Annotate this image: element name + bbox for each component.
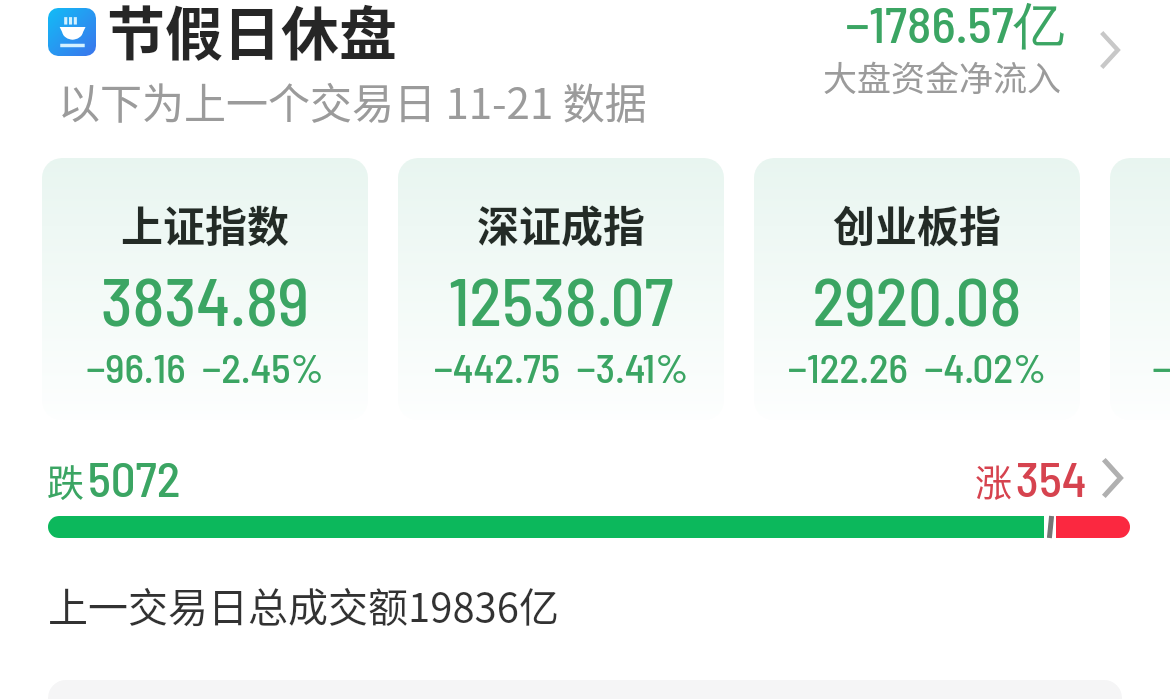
button[interactable]: 创业板指 [754, 158, 1080, 420]
button[interactable]: 节假日休盘 [48, 8, 96, 56]
staticText: 节假日休盘 [107, 0, 398, 72]
button[interactable]: 查看大盘资金净流入 [1084, 24, 1136, 76]
staticText: 3834.89 [42, 259, 368, 339]
staticText: 12538.07 [398, 259, 724, 339]
staticText: 创业板指 [754, 193, 1080, 254]
staticText: −96.16 −2.45% [42, 342, 368, 391]
other: 查看涨跌家数 [1103, 459, 1123, 497]
button[interactable]: 深证成指 [398, 158, 724, 420]
staticText: 2920.08 [754, 259, 1080, 339]
button[interactable]: 跌 5072 [0, 448, 1170, 543]
button[interactable]: 上证指数 [42, 158, 368, 420]
staticText: 跌 5072 [47, 448, 181, 508]
staticText: −122.26 −4.02% [754, 342, 1080, 391]
staticText: 深证成指 [398, 193, 724, 254]
staticText: 上一交易日总成交额19836亿 [48, 576, 559, 634]
staticText: 上证指数 [42, 193, 368, 254]
staticText: 涨 354 [975, 448, 1087, 508]
staticText: 大盘资金净流入 [787, 52, 1097, 101]
staticText: −1786.57亿 [800, 0, 1110, 58]
staticText: −38.07 −3.33% [1110, 342, 1170, 391]
button[interactable]: −1786.57亿 [800, 0, 1110, 105]
staticText: 以下为上一个交易日 11-21 数据 [58, 70, 647, 131]
staticText: −442.75 −3.41% [398, 342, 724, 391]
button[interactable]: 科创50 [1110, 158, 1170, 420]
